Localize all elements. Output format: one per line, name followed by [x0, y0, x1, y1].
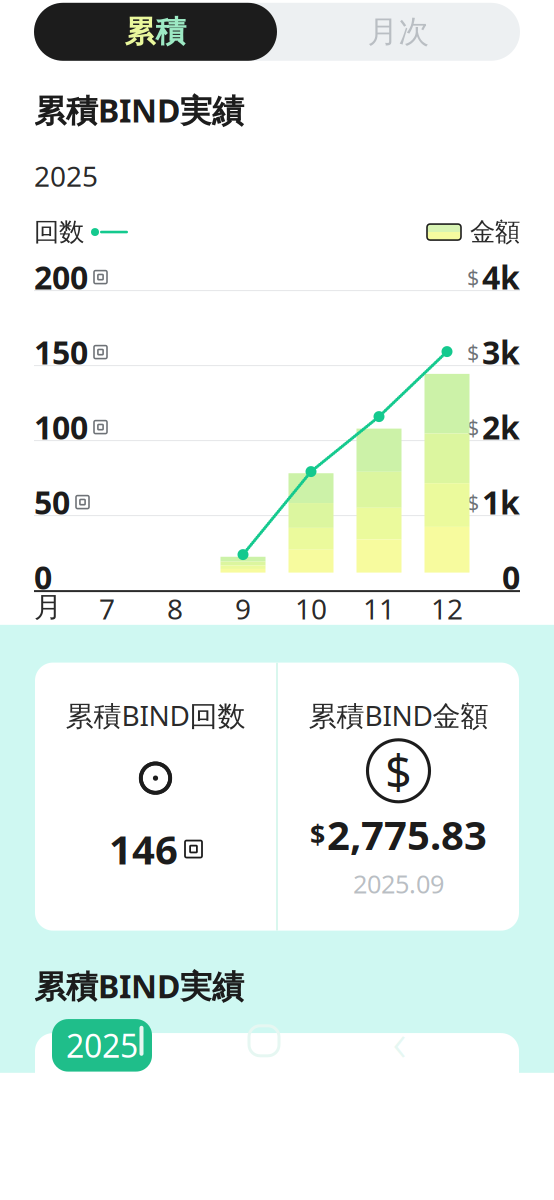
- staticText: ‹: [392, 1005, 406, 1076]
- staticText: 12: [431, 590, 463, 627]
- staticText: 月次: [367, 13, 429, 51]
- staticText: 2025: [34, 157, 98, 194]
- staticText: $: [467, 413, 479, 441]
- button[interactable]: 月次: [277, 3, 520, 61]
- button[interactable]: 累積BIND回数: [35, 663, 519, 931]
- staticText: $: [310, 817, 325, 852]
- staticText: 2025: [66, 1024, 138, 1067]
- staticText: 積: [155, 13, 186, 51]
- staticText: 累: [124, 13, 155, 51]
- button[interactable]: 累: [34, 3, 277, 61]
- staticText: 1k: [482, 481, 520, 523]
- staticText: 100: [34, 406, 88, 448]
- staticText: 3k: [482, 331, 520, 373]
- staticText: 9: [235, 590, 251, 627]
- staticText: 150: [34, 331, 88, 373]
- staticText: 回数: [34, 216, 84, 248]
- staticText: 累積BIND実績: [34, 89, 244, 131]
- staticText: 累積BIND実績: [34, 965, 244, 1007]
- staticText: 累積BIND回数: [65, 697, 245, 734]
- staticText: 200: [34, 256, 88, 298]
- staticText: 10: [295, 590, 327, 627]
- staticText: 累積BIND金額: [308, 697, 488, 734]
- staticText: 11: [363, 590, 395, 627]
- staticText: 金額: [470, 216, 520, 248]
- staticText: 月: [34, 590, 62, 624]
- staticText: $: [467, 338, 479, 366]
- staticText: 4k: [482, 256, 520, 298]
- staticText: 0: [502, 556, 520, 598]
- staticText: 2025.09: [353, 867, 444, 901]
- staticText: 8: [167, 590, 183, 627]
- staticText: 146: [109, 822, 178, 876]
- staticText: 7: [99, 590, 115, 627]
- staticText: 2k: [482, 406, 520, 448]
- staticText: 2,775.83: [327, 808, 487, 861]
- staticText: $: [385, 740, 412, 802]
- staticText: 0: [34, 556, 52, 598]
- staticText: 50: [34, 481, 70, 523]
- staticText: $: [467, 263, 479, 291]
- staticText: $: [467, 488, 479, 516]
